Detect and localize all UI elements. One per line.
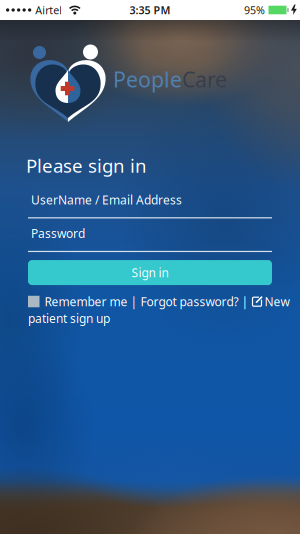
staticText: Forgot password? [140, 294, 238, 309]
button[interactable]: Password [28, 225, 272, 252]
staticText: | [127, 294, 140, 309]
staticText: Please sign in [26, 153, 147, 178]
staticText: | [238, 294, 251, 309]
staticText: patient sign up [28, 310, 110, 326]
button[interactable]: Forgot password? [140, 294, 238, 309]
staticText: 95% [244, 3, 265, 17]
button[interactable]: New [251, 294, 289, 309]
staticText: Sign in [131, 265, 168, 280]
staticText: Password [31, 225, 85, 241]
staticText: Care [182, 65, 227, 93]
staticText: Remember me [44, 294, 127, 309]
staticText: 3:35 PM [129, 3, 170, 17]
button[interactable]: UserName / Email Address [28, 192, 272, 218]
staticText: New [264, 294, 289, 309]
staticText: UserName / Email Address [31, 192, 182, 208]
button[interactable]: Remember me [28, 294, 127, 309]
button[interactable]: Sign in [28, 260, 272, 285]
staticText: Airtel [35, 3, 62, 17]
button[interactable]: patient sign up [28, 310, 110, 326]
staticText: People [113, 65, 182, 93]
